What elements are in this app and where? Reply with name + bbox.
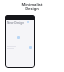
button[interactable]: Canvas	[17, 36, 20, 39]
staticText: Minimalist Design	[21, 2, 43, 11]
button[interactable]: New Design	[5, 15, 35, 68]
staticText: New Design	[7, 21, 25, 25]
button[interactable]: Export	[29, 46, 32, 49]
